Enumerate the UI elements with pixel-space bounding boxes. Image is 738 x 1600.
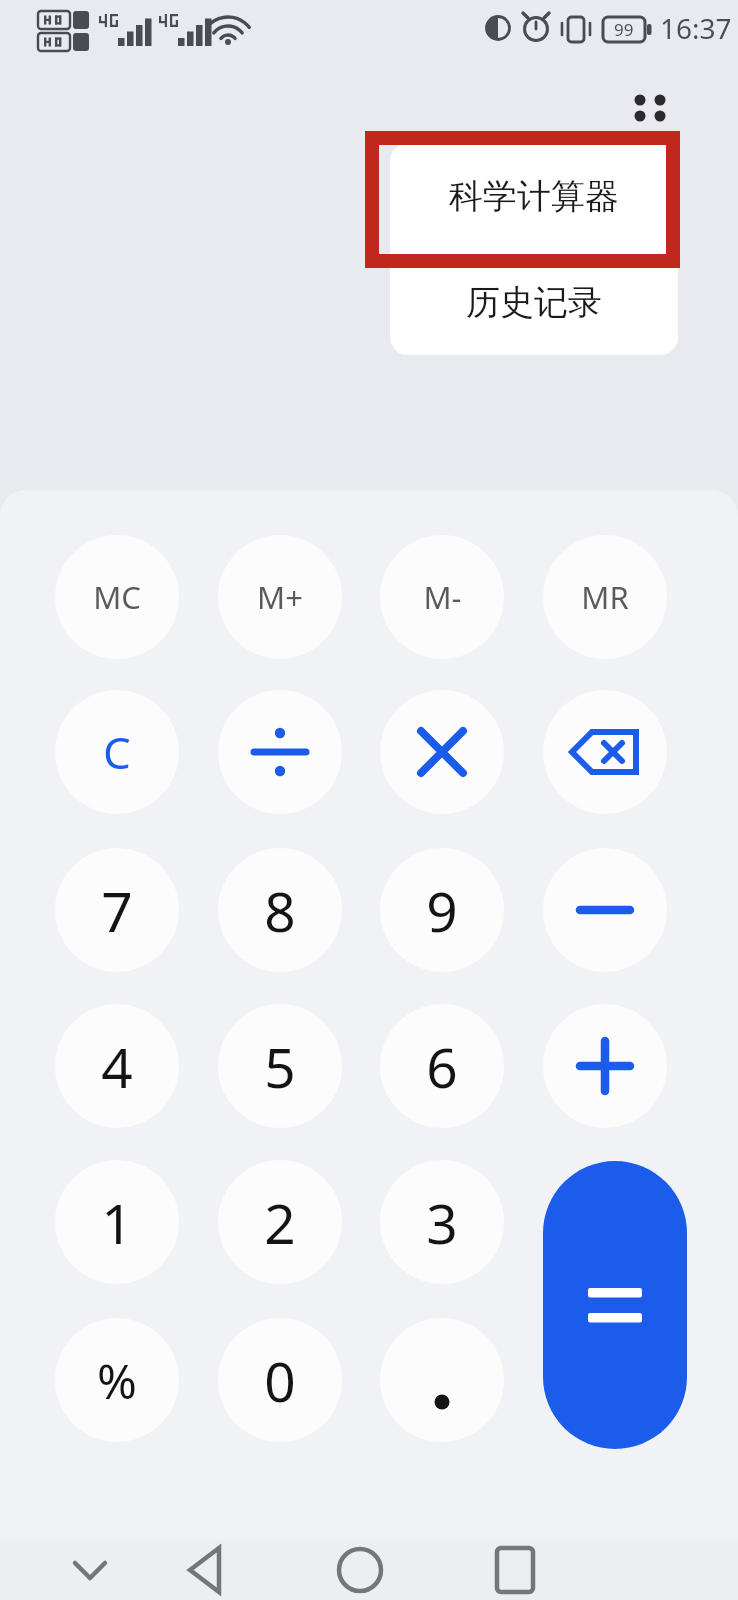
- staticText: 3: [426, 1185, 458, 1260]
- button[interactable]: Recents: [475, 1540, 555, 1600]
- button[interactable]: Home: [320, 1540, 400, 1600]
- button[interactable]: 科学计算器: [390, 143, 678, 249]
- button[interactable]: M+: [218, 535, 342, 659]
- button[interactable]: Minus: [543, 848, 667, 972]
- staticText: 2: [264, 1185, 296, 1260]
- button[interactable]: Equals: [543, 1161, 687, 1449]
- button[interactable]: 5: [218, 1004, 342, 1128]
- staticText: 8: [264, 873, 296, 948]
- button[interactable]: Multiply: [380, 690, 504, 814]
- staticText: 5: [264, 1029, 296, 1104]
- staticText: C: [103, 722, 131, 782]
- button[interactable]: 0: [218, 1318, 342, 1442]
- button[interactable]: Back: [167, 1540, 247, 1600]
- button[interactable]: 4: [55, 1004, 179, 1128]
- staticText: 科学计算器: [449, 175, 619, 218]
- button[interactable]: Hide keyboard: [50, 1540, 130, 1600]
- staticText: %: [97, 1348, 137, 1413]
- button[interactable]: MR: [543, 535, 667, 659]
- button[interactable]: More options: [614, 74, 688, 144]
- button[interactable]: 9: [380, 848, 504, 972]
- staticText: 6: [426, 1029, 458, 1104]
- button[interactable]: 8: [218, 848, 342, 972]
- button[interactable]: MC: [55, 535, 179, 659]
- staticText: MC: [93, 576, 141, 618]
- staticText: 4: [101, 1029, 133, 1104]
- staticText: 0: [264, 1343, 296, 1418]
- staticText: 9: [426, 873, 458, 948]
- button[interactable]: Decimal point: [380, 1318, 504, 1442]
- staticText: 99: [614, 18, 634, 40]
- button[interactable]: M-: [380, 535, 504, 659]
- button[interactable]: 2: [218, 1160, 342, 1284]
- button[interactable]: C: [55, 690, 179, 814]
- button[interactable]: Plus: [543, 1004, 667, 1128]
- staticText: 7: [101, 873, 133, 948]
- button[interactable]: Divide: [218, 690, 342, 814]
- staticText: 1: [101, 1185, 133, 1260]
- button[interactable]: %: [55, 1318, 179, 1442]
- button[interactable]: 历史记录: [390, 249, 678, 355]
- button[interactable]: 6: [380, 1004, 504, 1128]
- button[interactable]: 1: [55, 1160, 179, 1284]
- staticText: M-: [423, 576, 462, 618]
- staticText: 16:37: [660, 9, 732, 47]
- staticText: M+: [257, 576, 303, 618]
- button[interactable]: Backspace: [543, 690, 667, 814]
- staticText: MR: [581, 576, 629, 618]
- button[interactable]: 7: [55, 848, 179, 972]
- button[interactable]: 3: [380, 1160, 504, 1284]
- staticText: 历史记录: [466, 281, 602, 324]
